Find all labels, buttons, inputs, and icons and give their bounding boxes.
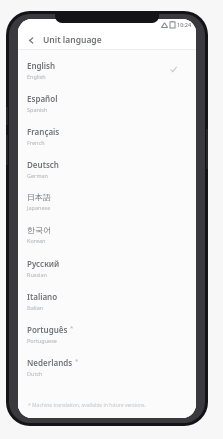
button[interactable]: Deutsch	[18, 152, 196, 185]
button[interactable]: Español	[18, 86, 196, 119]
staticText: English	[27, 73, 46, 80]
staticText: Русский	[27, 258, 60, 269]
staticText: English	[27, 60, 56, 71]
staticText: Portuguese	[27, 337, 57, 344]
staticText: French	[27, 139, 45, 146]
staticText: Deutsch	[27, 159, 59, 170]
button[interactable]: Nederlands	[18, 350, 196, 383]
staticText: 한국어	[27, 225, 51, 235]
button[interactable]: Back	[24, 33, 38, 47]
staticText: Spanish	[27, 106, 48, 113]
button[interactable]: Русский	[18, 251, 196, 284]
staticText: Japanese	[27, 204, 51, 211]
button[interactable]: 日本語	[18, 185, 196, 218]
staticText: Italian	[27, 304, 44, 311]
button[interactable]: Italiano	[18, 284, 196, 317]
staticText: Português	[27, 324, 68, 335]
staticText: Russian	[27, 271, 47, 278]
staticText: Nederlands	[27, 357, 73, 368]
staticText: Korean	[27, 237, 46, 244]
button[interactable]: Français	[18, 119, 196, 152]
staticText: Español	[27, 93, 58, 104]
staticText: German	[27, 172, 49, 179]
staticText: *	[70, 324, 74, 332]
staticText: 日本語	[27, 192, 51, 202]
staticText: *	[75, 357, 79, 365]
button[interactable]: Português	[18, 317, 196, 350]
staticText: Italiano	[27, 291, 58, 302]
staticText: Unit language	[43, 34, 102, 46]
button[interactable]: 한국어	[18, 218, 196, 251]
staticText: * Machine translation, available in futu…	[28, 402, 146, 409]
staticText: 10:24	[177, 21, 192, 28]
staticText: Dutch	[27, 370, 43, 377]
staticText: Français	[27, 126, 60, 137]
button[interactable]: English	[18, 53, 196, 86]
